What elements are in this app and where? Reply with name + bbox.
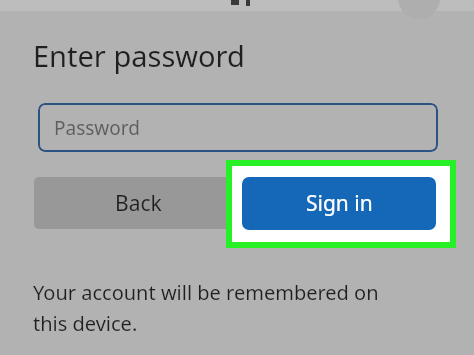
staticText: Your account will be remembered on this … — [33, 279, 433, 349]
button[interactable]: Sign in — [242, 177, 436, 230]
staticText: Sign in — [306, 189, 373, 218]
staticText: Password — [54, 115, 140, 141]
staticText: Back — [115, 189, 162, 218]
button[interactable]: Password — [38, 103, 438, 152]
staticText: Enter password — [33, 36, 245, 75]
button[interactable]: Back — [34, 177, 242, 229]
